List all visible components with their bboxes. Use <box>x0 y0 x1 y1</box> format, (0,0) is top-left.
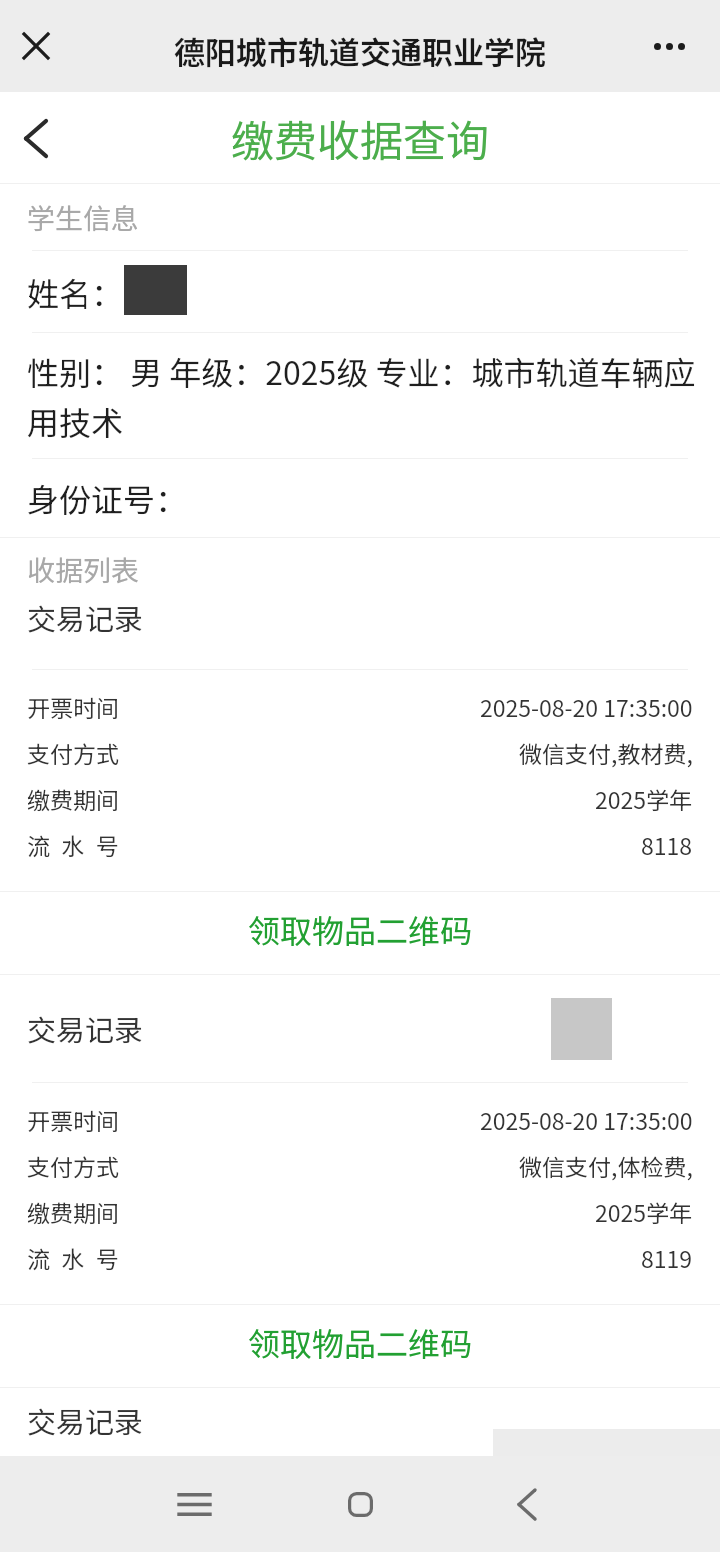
staticText: 交易记录 <box>27 596 144 638</box>
staticText: 开票时间 <box>27 690 119 723</box>
staticText: 支付方式 <box>27 736 119 769</box>
staticText: 缴费期间 <box>27 1195 119 1228</box>
button[interactable]: 交易记录 <box>0 1388 720 1456</box>
button[interactable]: 领取物品二维码 <box>0 1305 720 1387</box>
staticText: 微信支付,体检费, <box>519 1149 693 1182</box>
staticText: 收据列表 <box>27 549 140 590</box>
staticText: 性别： 男 年级：2025级 专业：城市轨道车辆应用技术 <box>27 348 698 444</box>
staticText: 姓名： <box>27 269 124 315</box>
button[interactable]: Recent apps <box>164 1474 224 1534</box>
button[interactable]: 身份证号： <box>27 459 720 537</box>
button[interactable]: 交易记录 <box>0 601 720 669</box>
staticText: 领取物品二维码 <box>248 906 473 952</box>
button[interactable]: Back <box>497 1474 557 1534</box>
staticText: 缴费期间 <box>27 782 119 815</box>
staticText: 交易记录 <box>27 1007 144 1049</box>
staticText: 2025学年 <box>595 1195 693 1228</box>
staticText: 8119 <box>641 1241 693 1274</box>
staticText: 8118 <box>641 828 693 861</box>
staticText: 微信支付,教材费, <box>519 736 693 769</box>
staticText: 德阳城市轨道交通职业学院 <box>174 28 546 73</box>
staticText: 领取物品二维码 <box>248 1319 473 1365</box>
button[interactable]: Close <box>8 18 64 74</box>
staticText: 支付方式 <box>27 1149 119 1182</box>
staticText: 2025学年 <box>595 782 693 815</box>
staticText: 开票时间 <box>27 1103 119 1136</box>
staticText: 流 水 号 <box>27 828 119 861</box>
button[interactable]: 领取物品二维码 <box>0 892 720 974</box>
button[interactable]: More options <box>639 18 699 74</box>
staticText: 学生信息 <box>27 197 140 238</box>
staticText: 2025-08-20 17:35:00 <box>480 1103 693 1136</box>
staticText: 缴费收据查询 <box>231 107 489 169</box>
staticText: 身份证号： <box>27 475 188 521</box>
button[interactable]: Home <box>330 1474 390 1534</box>
staticText: 交易记录 <box>27 1399 144 1441</box>
button[interactable]: 姓名： <box>27 251 720 332</box>
button[interactable]: 交易记录 <box>0 975 720 1082</box>
staticText: 流 水 号 <box>27 1241 119 1274</box>
button[interactable]: Back <box>8 110 64 166</box>
staticText: 2025-08-20 17:35:00 <box>480 690 693 723</box>
